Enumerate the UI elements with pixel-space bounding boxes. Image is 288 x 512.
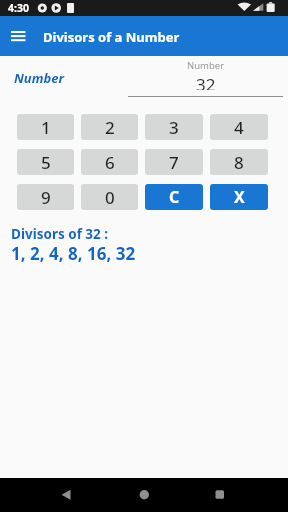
staticText: 1, 2, 4, 8, 16, 32 (11, 242, 136, 265)
button[interactable] (42, 478, 90, 512)
staticText: X (234, 186, 245, 208)
staticText: Number (14, 69, 64, 87)
button[interactable]: X (210, 184, 268, 210)
staticText: 8 (234, 151, 244, 174)
button[interactable]: Number (128, 59, 283, 97)
button[interactable]: C (145, 184, 203, 210)
button[interactable]: 3 (145, 114, 203, 140)
staticText: 2 (105, 116, 115, 139)
staticText: C (169, 186, 180, 208)
button[interactable]: 2 (81, 114, 138, 140)
staticText: 5 (41, 151, 51, 174)
button[interactable]: 7 (145, 149, 203, 175)
staticText: Divisors of 32 : (11, 225, 109, 242)
staticText: 3 (169, 116, 179, 139)
staticText: 4 (234, 116, 244, 139)
button[interactable] (0, 16, 37, 56)
button[interactable]: 1 (17, 114, 74, 140)
staticText: 1 (41, 116, 51, 139)
button[interactable] (120, 478, 168, 512)
staticText: Number (187, 59, 225, 72)
button[interactable]: 8 (210, 149, 268, 175)
staticText: 32 (196, 73, 216, 90)
button[interactable]: 5 (17, 149, 74, 175)
staticText: Divisors of a Number (43, 28, 180, 46)
staticText: 4:30 (8, 1, 29, 15)
button[interactable]: 0 (81, 184, 138, 210)
staticText: 7 (169, 151, 179, 174)
staticText: 6 (105, 151, 115, 174)
button[interactable]: 4 (210, 114, 268, 140)
button[interactable] (195, 478, 243, 512)
staticText: 0 (105, 186, 115, 209)
button[interactable]: 6 (81, 149, 138, 175)
button[interactable]: 9 (17, 184, 74, 210)
staticText: 9 (41, 186, 51, 209)
